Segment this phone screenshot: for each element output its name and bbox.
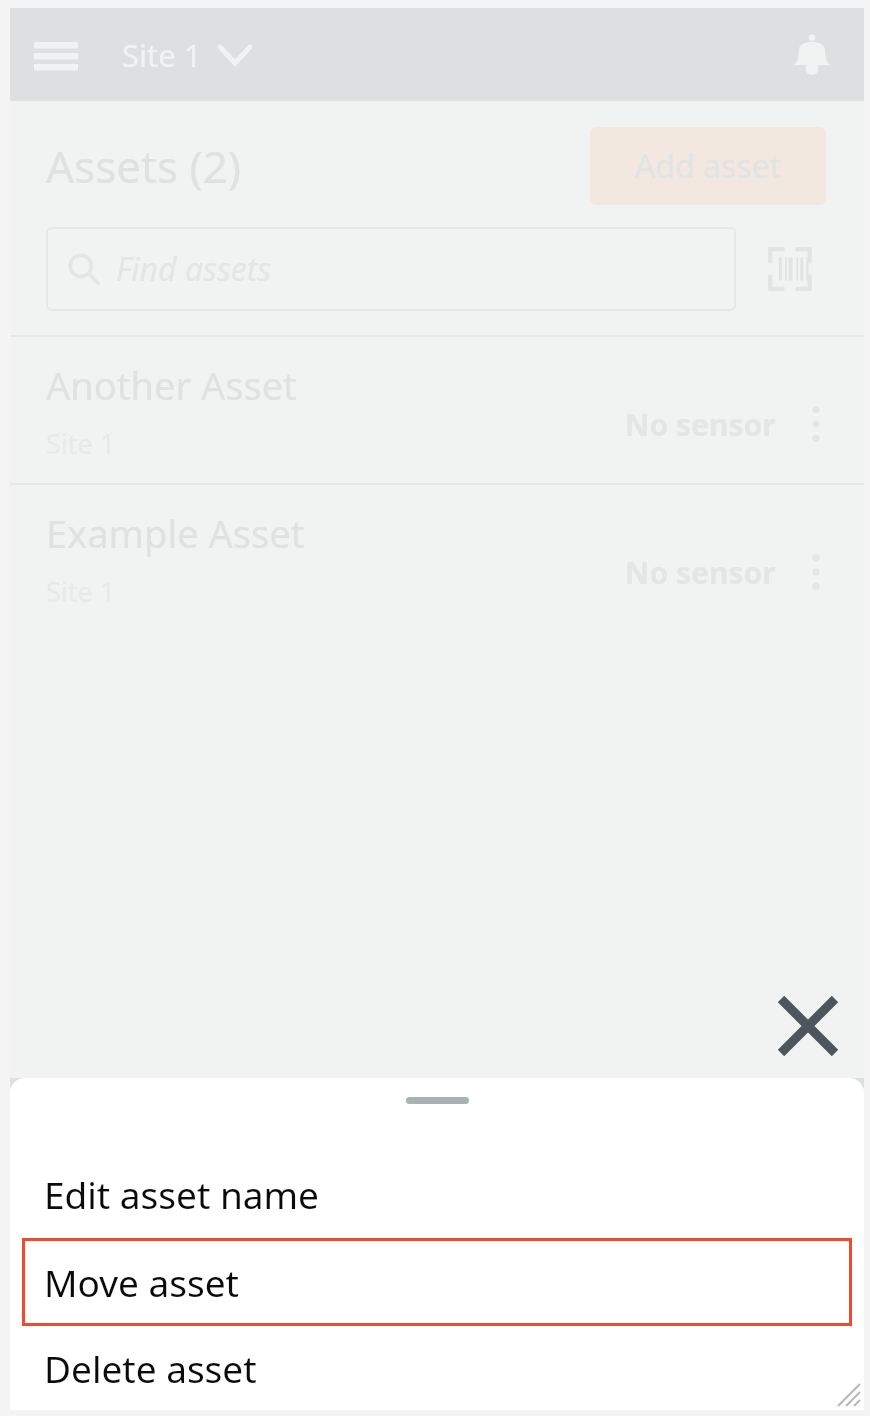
staticText: Move asset <box>44 1257 239 1307</box>
button[interactable]: Add asset <box>590 127 826 205</box>
staticText: No sensor <box>625 552 776 593</box>
button[interactable]: Move asset <box>22 1238 852 1326</box>
staticText: Site 1 <box>46 425 116 462</box>
staticText: Another Asset <box>46 359 297 411</box>
button[interactable]: Notifications <box>780 23 844 87</box>
staticText: Edit asset name <box>44 1169 319 1219</box>
button[interactable]: Site 1 <box>114 28 258 82</box>
button[interactable]: Scan barcode <box>754 233 826 305</box>
button[interactable]: Menu <box>24 24 88 88</box>
staticText: Site 1 <box>46 573 116 610</box>
button[interactable]: Find assets <box>46 227 736 311</box>
staticText: Add asset <box>635 144 782 188</box>
staticText: Find assets <box>116 247 272 291</box>
button[interactable]: Delete asset <box>22 1326 852 1410</box>
button[interactable]: Close <box>768 986 848 1066</box>
staticText: Example Asset <box>46 507 305 559</box>
staticText: Site 1 <box>122 34 202 76</box>
button[interactable]: Edit asset name <box>22 1150 852 1238</box>
staticText: No sensor <box>625 404 776 445</box>
staticText: Delete asset <box>44 1343 257 1393</box>
staticText: Assets (2) <box>46 136 242 196</box>
